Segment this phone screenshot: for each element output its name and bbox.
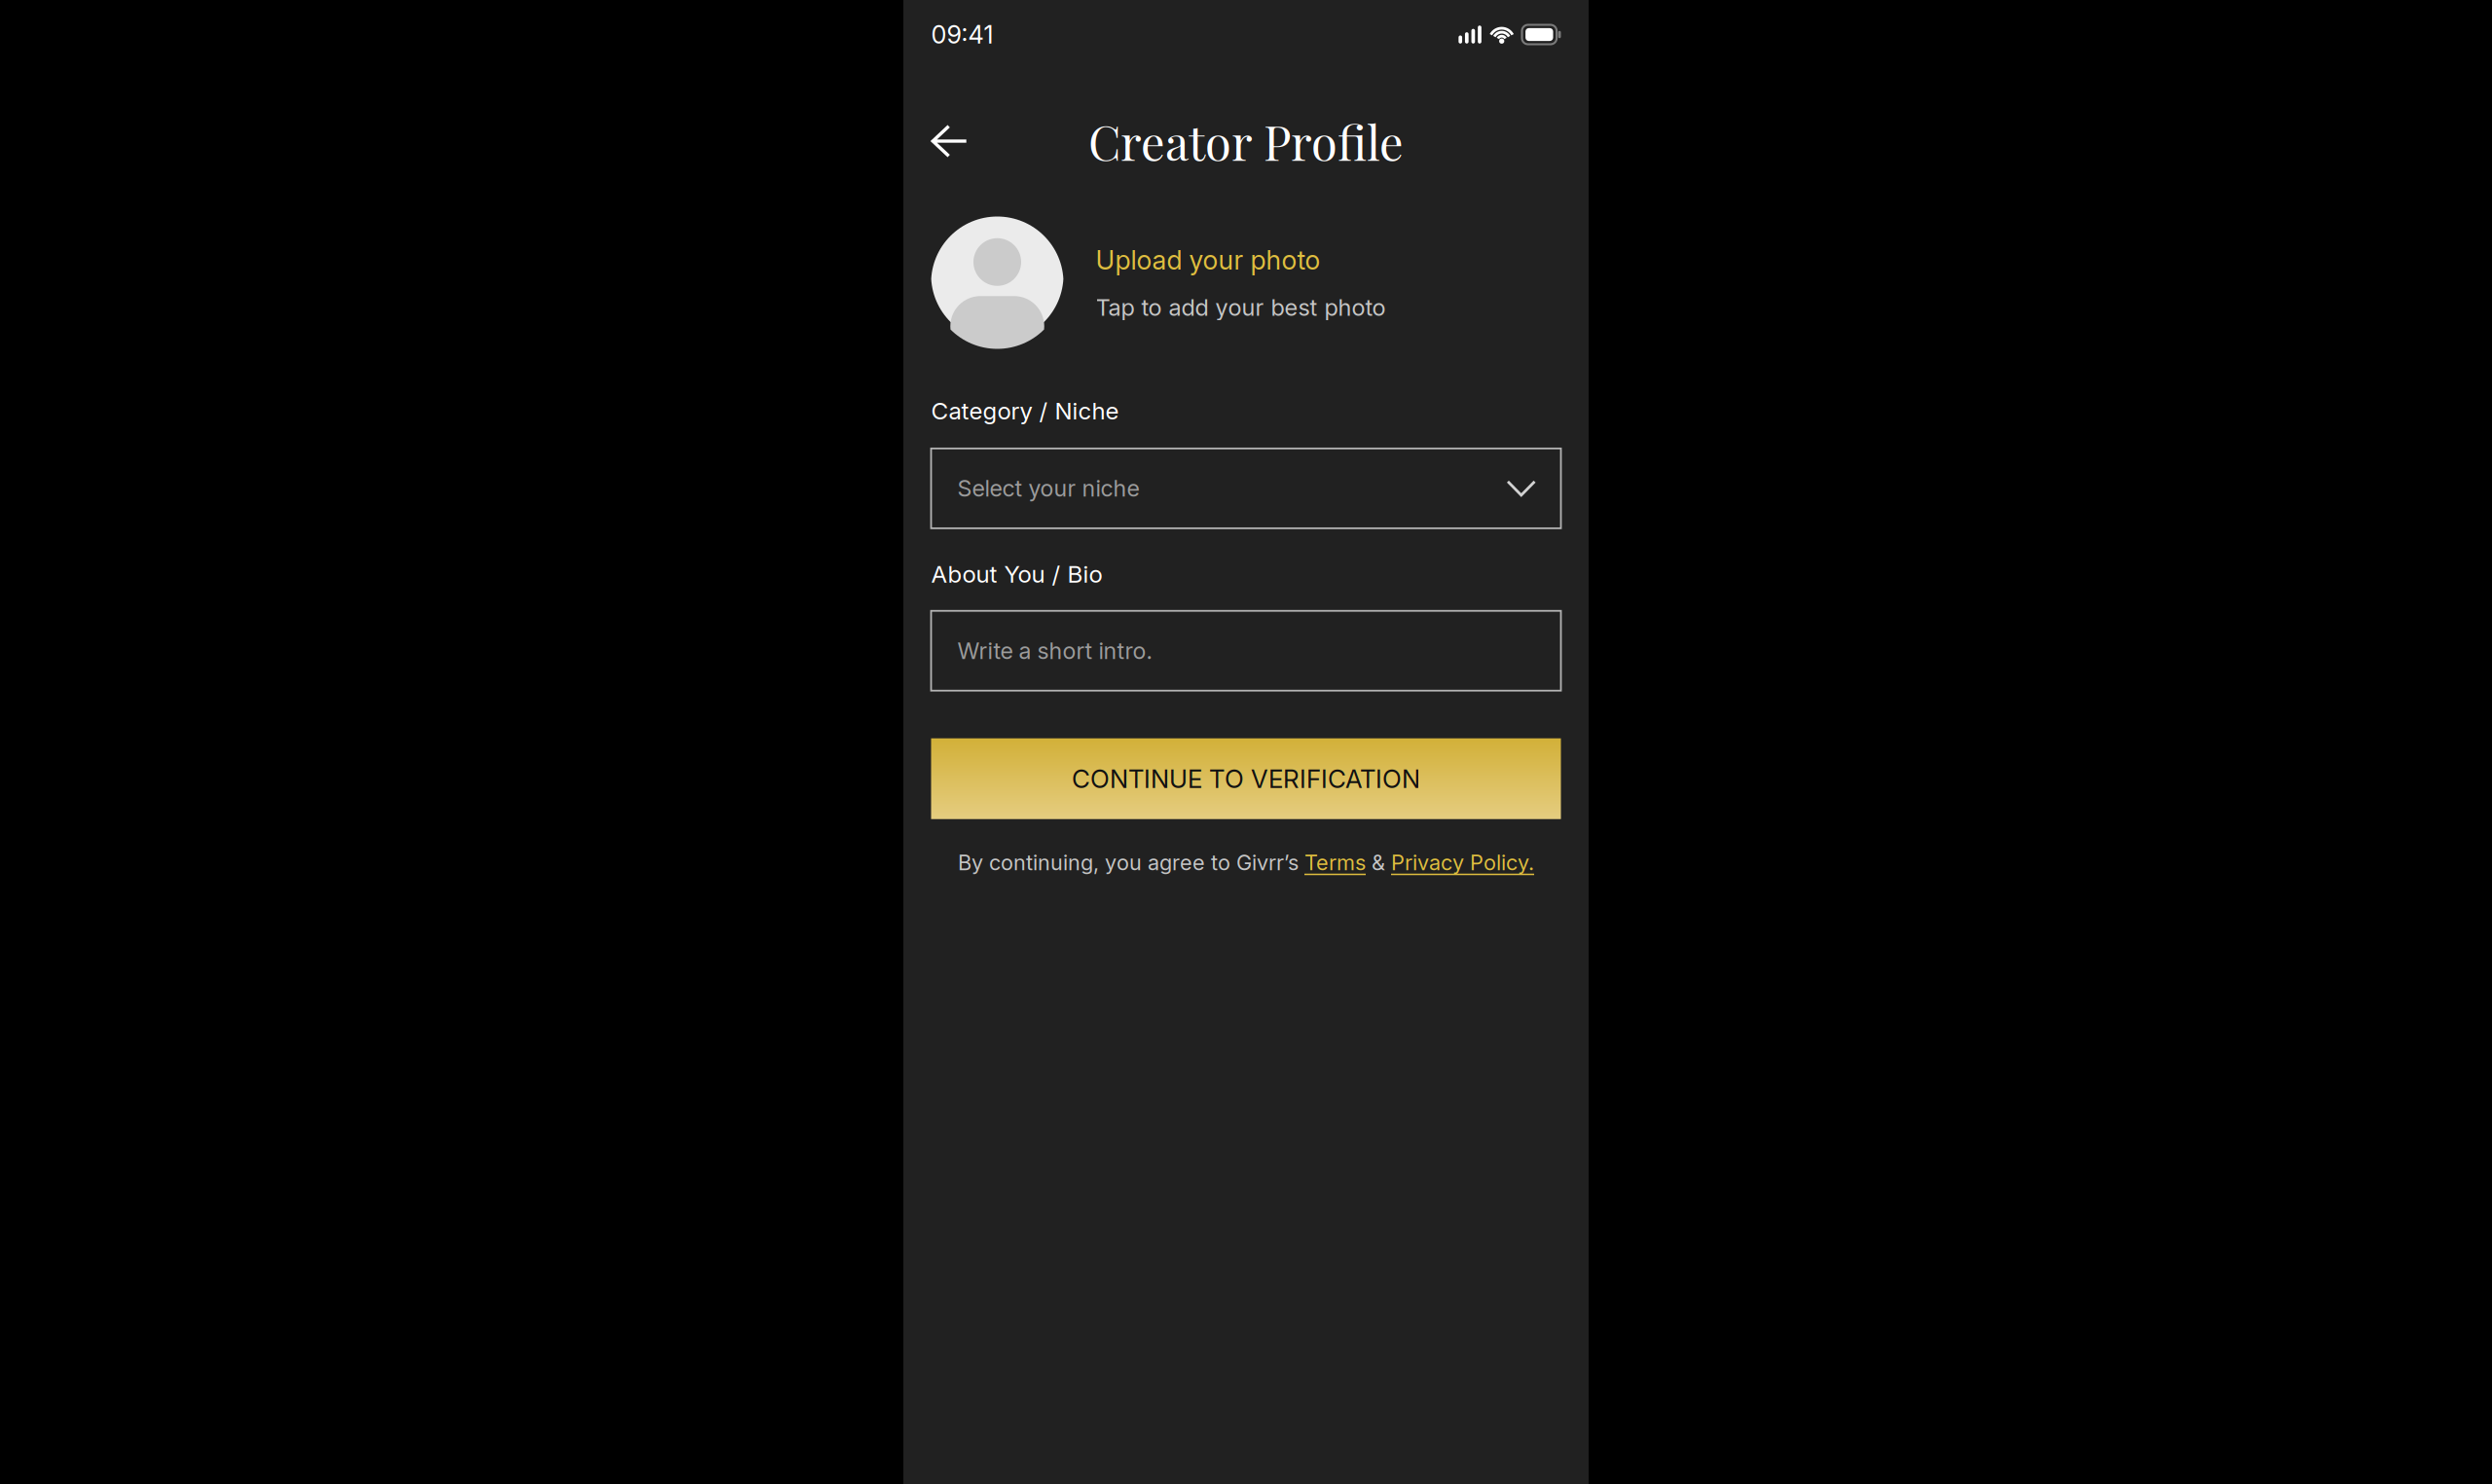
staticText: CONTINUE TO VERIFICATION xyxy=(1072,764,1420,794)
staticText: & xyxy=(1366,850,1391,875)
staticText: Category / Niche xyxy=(931,397,1119,425)
button[interactable]: Terms xyxy=(1304,850,1366,875)
staticText: Terms xyxy=(1304,850,1366,875)
button[interactable]: CONTINUE TO VERIFICATION xyxy=(931,738,1561,819)
staticText: Write a short intro. xyxy=(957,637,1152,664)
staticText: Privacy Policy. xyxy=(1391,850,1534,875)
staticText: By continuing, you agree to Givrr’s xyxy=(958,850,1304,875)
button[interactable]: Upload your photo xyxy=(903,188,1589,349)
staticText: About You / Bio xyxy=(931,560,1102,589)
staticText: Upload your photo xyxy=(1096,244,1320,276)
button[interactable]: Write a short intro. xyxy=(931,611,1561,691)
staticText: Creator Profile xyxy=(1088,110,1404,173)
staticText: 09:41 xyxy=(931,20,993,50)
button[interactable]: Privacy Policy. xyxy=(1391,850,1534,875)
button[interactable]: Back xyxy=(931,112,989,170)
staticText: Select your niche xyxy=(957,475,1139,502)
staticText: Tap to add your best photo xyxy=(1096,293,1386,321)
button[interactable]: Select your niche xyxy=(931,449,1561,528)
